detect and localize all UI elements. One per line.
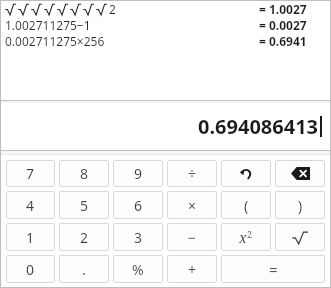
button[interactable]: 3 — [113, 223, 163, 251]
staticText: % — [132, 260, 144, 279]
staticText: 0.002711275×256 — [5, 33, 105, 49]
staticText: = 0.0027 — [259, 17, 321, 33]
button[interactable]: 7 — [6, 160, 55, 187]
staticText: 1.002711275−1 — [5, 17, 91, 33]
button[interactable]: Backspace — [275, 160, 325, 187]
button[interactable]: . — [59, 255, 109, 283]
staticText: 5 — [80, 196, 89, 215]
button[interactable]: 9 — [113, 160, 163, 187]
staticText: + — [188, 260, 197, 279]
staticText: × — [188, 196, 197, 215]
button[interactable]: + — [167, 255, 217, 283]
button[interactable]: 1 — [6, 223, 55, 251]
button[interactable]: 8 — [59, 160, 109, 187]
staticText: 2 — [80, 228, 89, 247]
staticText: 2 — [109, 1, 116, 17]
staticText: 2 — [247, 228, 253, 240]
staticText: ( — [244, 196, 249, 215]
staticText: − — [188, 228, 197, 247]
staticText: = 1.0027 — [259, 1, 321, 17]
button[interactable]: % — [113, 255, 163, 283]
staticText: = 0.6941 — [259, 33, 321, 49]
staticText: x — [239, 228, 247, 247]
button[interactable]: × — [167, 191, 217, 219]
button[interactable]: ÷ — [167, 160, 217, 187]
button[interactable]: ) — [275, 191, 325, 219]
button[interactable]: Square root — [275, 223, 325, 251]
button[interactable]: 0 — [6, 255, 55, 283]
staticText: 3 — [134, 228, 143, 247]
button[interactable]: = — [221, 255, 325, 283]
button[interactable]: 5 — [59, 191, 109, 219]
button[interactable]: ( — [221, 191, 271, 219]
staticText: 0 — [26, 260, 35, 279]
staticText: 6 — [134, 196, 143, 215]
staticText: 8 — [80, 164, 89, 183]
staticText: 9 — [134, 164, 143, 183]
staticText: . — [82, 260, 86, 279]
staticText: 1 — [26, 228, 35, 247]
button[interactable]: − — [167, 223, 217, 251]
staticText: 0.694086413 — [198, 113, 319, 140]
staticText: ) — [298, 196, 303, 215]
button[interactable]: Undo — [221, 160, 271, 187]
staticText: ÷ — [188, 164, 197, 183]
button[interactable]: 2 — [59, 223, 109, 251]
button[interactable]: Square — [221, 223, 271, 251]
button[interactable]: 4 — [6, 191, 55, 219]
staticText: = — [269, 259, 278, 279]
button[interactable]: 6 — [113, 191, 163, 219]
staticText: 4 — [26, 196, 35, 215]
staticText: 7 — [26, 164, 35, 183]
